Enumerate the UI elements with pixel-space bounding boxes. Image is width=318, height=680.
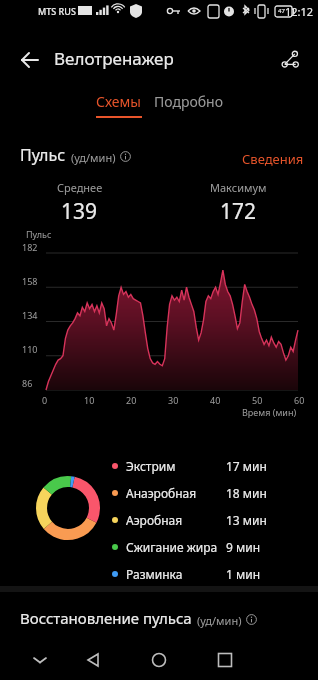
button[interactable]: Анаэробная — [112, 481, 302, 505]
staticText: 10 — [84, 394, 95, 406]
staticText: 30 — [168, 394, 179, 406]
staticText: Схемы — [96, 92, 141, 111]
staticText: Подробно — [154, 92, 224, 111]
staticText: Экстрим — [126, 458, 226, 474]
staticText: 13 мин — [226, 512, 267, 528]
staticText: (уд/мин) — [197, 613, 242, 628]
staticText: Сведения — [242, 150, 304, 166]
button[interactable]: Аэробная — [112, 508, 302, 532]
staticText: 1 мин — [226, 566, 261, 582]
staticText: 182 — [22, 241, 38, 253]
button[interactable]: Экстрим — [112, 454, 302, 478]
button[interactable]: Схемы — [88, 92, 149, 122]
staticText: Анаэробная — [126, 485, 226, 501]
staticText: Пульс — [20, 144, 66, 166]
staticText: 40 — [210, 394, 221, 406]
staticText: Восстановление пульса — [20, 608, 192, 628]
staticText: 158 — [22, 275, 38, 287]
button[interactable]: Recents — [209, 644, 241, 676]
button[interactable]: Collapse — [24, 644, 56, 676]
button[interactable]: Сжигание жира — [112, 535, 302, 559]
staticText: 139 — [61, 197, 98, 226]
staticText: 20 — [126, 394, 137, 406]
staticText: 47 — [278, 7, 285, 15]
staticText: Среднее — [57, 180, 103, 195]
staticText: 50 — [252, 394, 263, 406]
staticText: 9 мин — [226, 539, 261, 555]
button[interactable]: Пульс — [20, 144, 131, 166]
staticText: Время (мин) — [242, 406, 297, 418]
staticText: Разминка — [126, 566, 226, 582]
button[interactable]: Back — [77, 644, 109, 676]
button[interactable]: Share — [274, 44, 306, 76]
staticText: Велотренажер — [54, 47, 174, 70]
button[interactable]: Подробно — [150, 92, 228, 122]
staticText: 110 — [22, 343, 38, 355]
staticText: 86 — [22, 377, 33, 389]
staticText: 134 — [22, 309, 38, 321]
button[interactable]: Сведения — [242, 150, 304, 166]
staticText: Сжигание жира — [126, 539, 226, 555]
staticText: Аэробная — [126, 512, 226, 528]
staticText: 172 — [220, 197, 257, 226]
button[interactable]: Восстановление пульса — [20, 608, 257, 628]
button[interactable]: Разминка — [112, 562, 302, 586]
staticText: MTS RUS — [38, 5, 76, 17]
staticText: (уд/мин) — [71, 150, 116, 165]
staticText: 60 — [294, 394, 305, 406]
staticText: Максимум — [210, 180, 267, 195]
staticText: 12:12 — [285, 4, 314, 19]
button[interactable]: Home — [143, 644, 175, 676]
staticText: Пульс — [26, 228, 52, 240]
staticText: 0 — [42, 394, 48, 406]
staticText: 17 мин — [226, 458, 267, 474]
button[interactable]: Back — [16, 46, 44, 74]
staticText: 18 мин — [226, 485, 267, 501]
